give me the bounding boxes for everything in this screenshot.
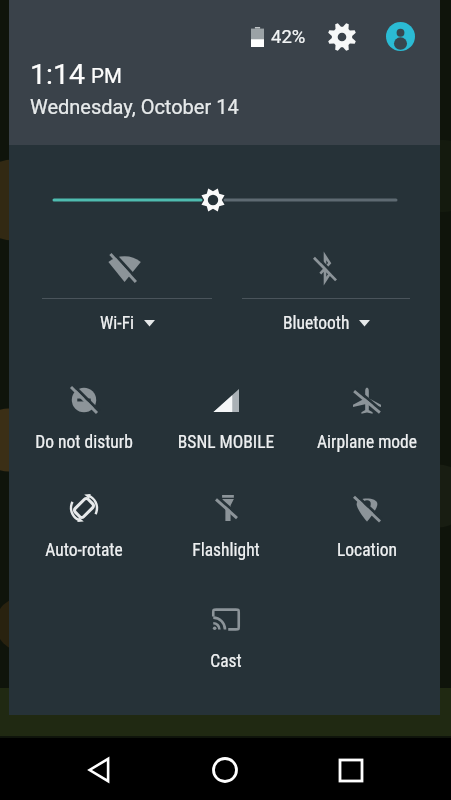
staticText: 42% [271, 26, 306, 48]
button[interactable]: Airplane mode [297, 386, 437, 470]
button[interactable]: BSNL MOBILE [156, 386, 296, 470]
button[interactable]: Home [211, 756, 239, 784]
button[interactable]: Cast [156, 605, 296, 689]
button[interactable]: Location [297, 494, 437, 578]
staticText: 1:14 [30, 58, 85, 91]
staticText: Flashlight [156, 540, 296, 561]
staticText: Wednesday, October 14 [30, 95, 239, 118]
button[interactable]: Brightness [40, 182, 410, 218]
staticText: BSNL MOBILE [156, 432, 296, 453]
button[interactable]: Auto-rotate [14, 494, 154, 578]
staticText: Wi-Fi [100, 313, 135, 334]
staticText: Bluetooth [283, 313, 350, 334]
button[interactable]: Recent apps [337, 756, 365, 784]
button[interactable]: Do not disturb [14, 386, 154, 470]
staticText: PM [91, 64, 122, 88]
button[interactable]: Flashlight [156, 494, 296, 578]
button[interactable]: Wi-Fi [42, 240, 212, 338]
button[interactable]: Settings [327, 22, 357, 52]
button[interactable]: User profile [386, 22, 415, 51]
staticText: Airplane mode [297, 432, 437, 453]
button[interactable]: Back [86, 756, 114, 784]
button[interactable]: Bluetooth [242, 240, 410, 338]
staticText: Location [297, 540, 437, 561]
staticText: Auto-rotate [14, 540, 154, 561]
staticText: Do not disturb [14, 432, 154, 453]
staticText: Cast [156, 651, 296, 672]
